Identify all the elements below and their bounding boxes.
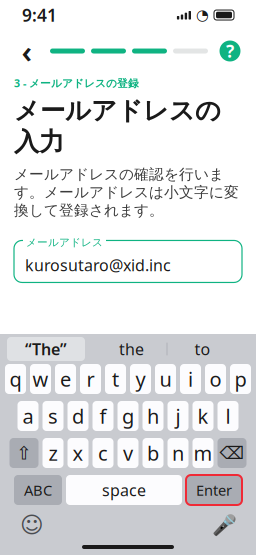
button[interactable]: Back (14, 36, 40, 66)
button[interactable]: y (130, 364, 151, 394)
button[interactable]: n (167, 438, 188, 468)
staticText: f (99, 403, 106, 429)
button[interactable]: Emoji (17, 511, 47, 539)
button[interactable]: Dictate (209, 511, 239, 539)
button[interactable]: g (117, 401, 138, 431)
staticText: the (119, 338, 144, 360)
staticText: j (175, 403, 180, 429)
staticText: メールアドレス (26, 236, 103, 249)
staticText: d (72, 403, 84, 429)
button[interactable]: u (155, 364, 176, 394)
button[interactable]: Help (218, 39, 242, 63)
staticText: k (197, 403, 208, 429)
button[interactable]: o (205, 364, 226, 394)
staticText: ☺ (20, 512, 44, 538)
staticText: ? (226, 39, 234, 62)
staticText: e (60, 366, 71, 392)
button[interactable]: the (96, 337, 166, 361)
staticText: 🎤 (211, 514, 236, 536)
button[interactable]: r (80, 364, 101, 394)
button[interactable]: j (167, 401, 188, 431)
staticText: s (48, 403, 58, 429)
button[interactable]: l (217, 401, 238, 431)
staticText: v (123, 440, 133, 466)
staticText: p (234, 366, 246, 392)
staticText: h (147, 403, 159, 429)
button[interactable]: k (192, 401, 213, 431)
staticText: a (22, 403, 33, 429)
staticText: メールアドレスの入力 (14, 95, 221, 157)
staticText: ABC (24, 480, 52, 500)
button[interactable]: b (142, 438, 163, 468)
staticText: m (193, 440, 212, 466)
button[interactable]: “The” (7, 337, 85, 361)
button[interactable]: Shift (9, 438, 38, 468)
button[interactable]: ABC (14, 475, 62, 505)
button[interactable]: i (180, 364, 201, 394)
button[interactable]: c (92, 438, 113, 468)
button[interactable]: Delete (217, 438, 246, 468)
staticText: kurosutaro@xid.inc (25, 254, 171, 276)
staticText: z (48, 440, 57, 466)
button[interactable]: a (17, 401, 38, 431)
button[interactable]: d (67, 401, 88, 431)
staticText: n (172, 440, 184, 466)
button[interactable]: z (42, 438, 63, 468)
staticText: q (9, 366, 21, 392)
staticText: g (122, 403, 134, 429)
staticText: y (135, 366, 145, 392)
staticText: u (159, 366, 171, 392)
button[interactable]: Enter (186, 475, 242, 505)
button[interactable]: q (5, 364, 26, 394)
staticText: space (102, 479, 146, 501)
button[interactable]: w (30, 364, 51, 394)
staticText: ⌫ (219, 443, 244, 463)
staticText: to (194, 338, 210, 360)
staticText: t (112, 366, 119, 392)
staticText: ⇧ (16, 442, 32, 464)
staticText: x (72, 440, 83, 466)
staticText: i (188, 366, 193, 392)
staticText: b (147, 440, 159, 466)
staticText: Enter (196, 480, 232, 500)
staticText: w (32, 366, 48, 392)
staticText: 3 - メールアドレスの登録 (14, 76, 139, 90)
staticText: l (225, 403, 230, 429)
staticText: “The” (25, 338, 67, 360)
button[interactable]: f (92, 401, 113, 431)
button[interactable]: e (55, 364, 76, 394)
staticText: 9:41 (22, 3, 57, 26)
button[interactable]: h (142, 401, 163, 431)
button[interactable]: p (230, 364, 251, 394)
button[interactable]: v (117, 438, 138, 468)
button[interactable]: m (192, 438, 213, 468)
button[interactable]: x (67, 438, 88, 468)
staticText: メールアドレスの確認を行います。メールアドレスは小文字に変換して登録されます。 (14, 165, 239, 219)
button[interactable]: space (66, 475, 182, 505)
staticText: r (86, 366, 94, 392)
button[interactable]: s (42, 401, 63, 431)
button[interactable]: t (105, 364, 126, 394)
staticText: o (209, 366, 221, 392)
staticText: c (98, 440, 108, 466)
button[interactable]: to (167, 337, 237, 361)
staticText: ‹ (21, 31, 32, 71)
staticText: ◔ (196, 7, 209, 23)
